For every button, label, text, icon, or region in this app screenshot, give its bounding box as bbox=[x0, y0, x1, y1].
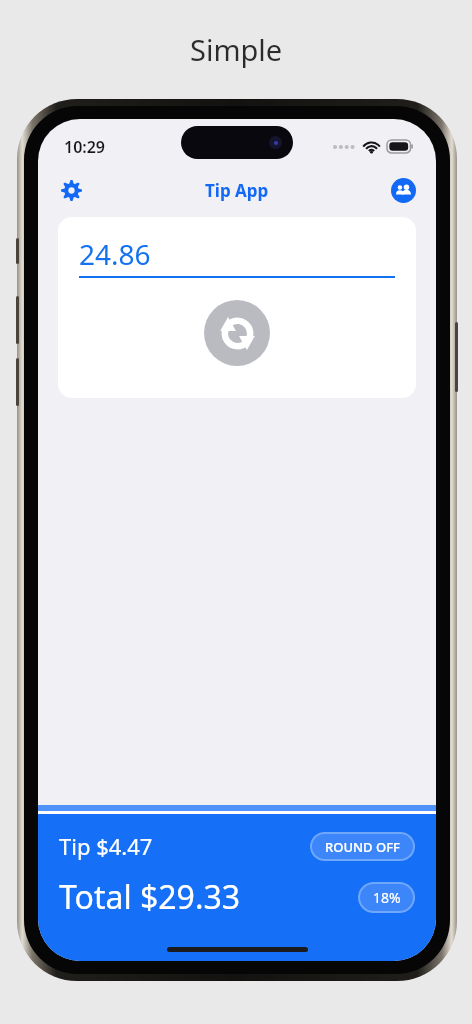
button[interactable]: Reset amount bbox=[204, 300, 270, 366]
staticText: Simple bbox=[190, 30, 283, 69]
button[interactable]: 24.86 bbox=[79, 235, 395, 278]
staticText: 24.86 bbox=[79, 235, 151, 273]
button[interactable]: ROUND OFF bbox=[310, 832, 415, 861]
staticText: Total $29.33 bbox=[59, 875, 241, 919]
button[interactable]: Split bill with people bbox=[383, 170, 423, 210]
staticText: 18% bbox=[373, 888, 401, 907]
staticText: Tip $4.47 bbox=[59, 831, 153, 861]
staticText: 10:29 bbox=[64, 136, 106, 158]
button[interactable]: Settings bbox=[51, 170, 91, 210]
staticText: Tip App bbox=[205, 179, 269, 202]
staticText: ROUND OFF bbox=[325, 838, 400, 856]
button[interactable]: 18% bbox=[358, 882, 415, 913]
